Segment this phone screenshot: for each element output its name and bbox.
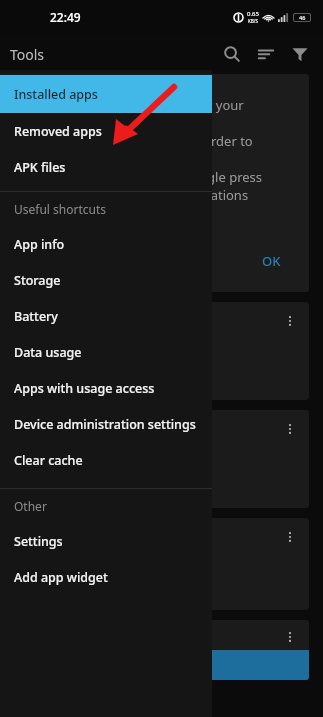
button[interactable]: More options xyxy=(279,526,301,548)
staticText: apps. Long press an item in order to xyxy=(32,132,253,150)
staticText: apk share: version xyxy=(30,348,133,364)
button[interactable]: Battery xyxy=(0,298,212,334)
staticText: Tap to see more details about your xyxy=(32,96,244,114)
button[interactable]: More options xyxy=(18,410,309,508)
staticText: Storage xyxy=(14,272,61,289)
staticText: select it. You can also use single press xyxy=(32,168,263,186)
staticText: Clock, date xyxy=(30,544,92,560)
button[interactable]: Sort xyxy=(249,37,283,71)
staticText: Device administration settings xyxy=(14,416,196,433)
button[interactable]: SCANNERS xyxy=(18,650,309,680)
staticText: Apps with usage access xyxy=(14,380,155,397)
staticText: 0.65 xyxy=(247,10,259,18)
button[interactable]: More options xyxy=(279,418,301,440)
staticText: Installed apps xyxy=(14,86,98,103)
button[interactable]: Device administration settings xyxy=(0,406,212,442)
button[interactable]: Add app widget xyxy=(0,559,212,595)
staticText: Other xyxy=(14,498,47,514)
button[interactable]: Apps with usage access xyxy=(0,370,212,406)
button[interactable]: OK xyxy=(252,246,291,276)
staticText: APK files xyxy=(14,159,66,176)
staticText: Removed apps xyxy=(14,123,102,140)
staticText: 22, app size: 22 xyxy=(30,584,116,600)
staticText: to select items for batch operations xyxy=(32,186,249,204)
button[interactable]: Removed apps xyxy=(0,113,212,149)
staticText: 1.3.5, app xyxy=(30,368,85,384)
staticText: Tools xyxy=(10,45,45,64)
button[interactable]: Filter xyxy=(283,37,317,71)
button[interactable]: Storage xyxy=(0,262,212,298)
button[interactable]: APK files xyxy=(0,149,212,185)
staticText: Settings xyxy=(14,533,63,550)
staticText: Data usage xyxy=(14,344,82,361)
staticText: Useful shortcuts xyxy=(14,201,107,217)
staticText: Clear cache xyxy=(14,452,83,469)
staticText: KB/S xyxy=(248,18,258,24)
button[interactable]: App info xyxy=(0,226,212,262)
staticText: Version code: xyxy=(30,564,106,580)
button[interactable]: More options xyxy=(279,626,301,648)
staticText: Add app widget xyxy=(14,569,108,586)
button[interactable]: More options xyxy=(18,302,309,400)
staticText: App info xyxy=(14,236,65,253)
staticText: 54, app size: 54 xyxy=(30,476,116,492)
staticText: 22:49 xyxy=(50,9,81,25)
staticText: 46 xyxy=(299,14,306,21)
button[interactable]: Clear cache xyxy=(0,442,212,478)
staticText: Battery xyxy=(14,308,58,325)
staticText: Version code: xyxy=(30,456,106,472)
button[interactable]: More options xyxy=(279,310,301,332)
button[interactable]: Settings xyxy=(0,523,212,559)
button[interactable]: Installed apps xyxy=(0,75,212,113)
button[interactable]: More options xyxy=(18,518,309,610)
button[interactable]: Data usage xyxy=(0,334,212,370)
button[interactable]: Search xyxy=(215,37,249,71)
staticText: OK xyxy=(262,252,281,270)
